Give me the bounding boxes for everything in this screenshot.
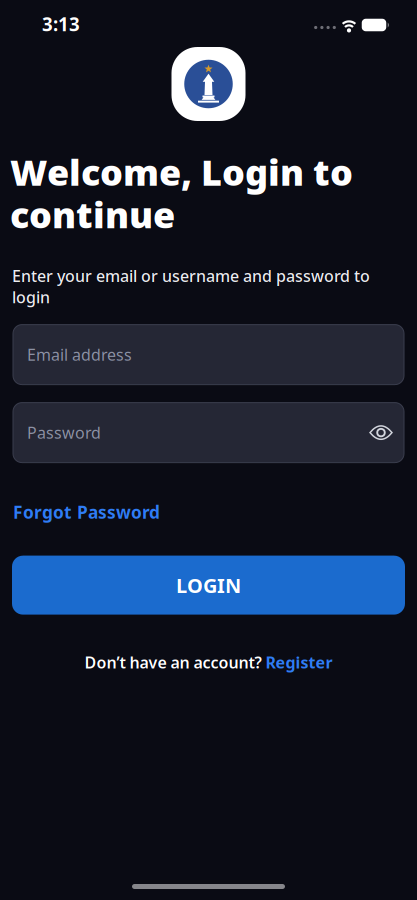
staticText: Enter your email or username and passwor…	[12, 265, 370, 286]
staticText: Forgot Password	[13, 501, 160, 524]
staticText: Password	[27, 422, 101, 443]
button[interactable]: Forgot Password	[13, 501, 160, 524]
button[interactable]: Register	[265, 652, 332, 673]
staticText: continue	[10, 190, 175, 238]
staticText: Welcome, Login to	[10, 148, 353, 196]
staticText: Register	[265, 652, 332, 673]
staticText: LOGIN	[176, 572, 241, 598]
button[interactable]: Password	[13, 403, 404, 463]
button[interactable]: Show password	[369, 425, 393, 441]
button[interactable]: LOGIN	[12, 556, 405, 615]
staticText: Email address	[27, 344, 132, 365]
staticText: Don’t have an account?	[84, 652, 265, 673]
button[interactable]: Email address	[13, 325, 404, 385]
staticText: login	[12, 286, 50, 308]
staticText: 3:13	[42, 12, 80, 36]
